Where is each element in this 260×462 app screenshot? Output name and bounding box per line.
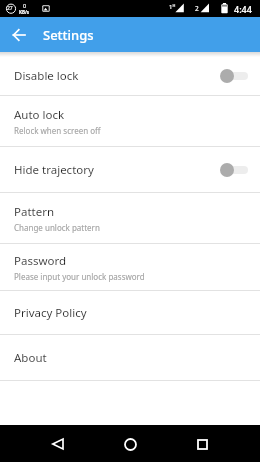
button[interactable] (180, 426, 224, 462)
button[interactable]: Auto lock (0, 96, 260, 146)
button[interactable] (108, 426, 152, 462)
staticText: About (14, 350, 47, 366)
button[interactable] (220, 163, 248, 177)
button[interactable]: About (0, 335, 260, 380)
staticText: Privacy Policy (14, 305, 87, 321)
staticText: 1ᴴ (169, 3, 176, 11)
button[interactable]: Privacy Policy (0, 291, 260, 334)
staticText: 27 (7, 5, 13, 12)
staticText: 2 (195, 4, 199, 13)
button[interactable]: Pattern (0, 193, 260, 243)
staticText: Pattern (14, 204, 55, 220)
button[interactable]: Password (0, 244, 260, 290)
staticText: Change unlock pattern (14, 222, 100, 233)
staticText: Settings (43, 26, 94, 44)
staticText: Hide trajectory (14, 162, 94, 178)
staticText: Auto lock (14, 107, 65, 123)
staticText: KB/s (19, 9, 30, 15)
staticText: Relock when screen off (14, 125, 101, 136)
button[interactable] (220, 69, 248, 83)
button[interactable] (36, 426, 80, 462)
staticText: Please input your unlock password (14, 271, 145, 282)
button[interactable]: Hide trajectory (0, 147, 260, 192)
button[interactable] (8, 24, 30, 46)
staticText: 0 (23, 2, 27, 9)
staticText: Password (14, 253, 67, 269)
staticText: 4:44 (234, 3, 252, 15)
staticText: Disable lock (14, 68, 79, 84)
button[interactable]: Disable lock (0, 57, 260, 95)
